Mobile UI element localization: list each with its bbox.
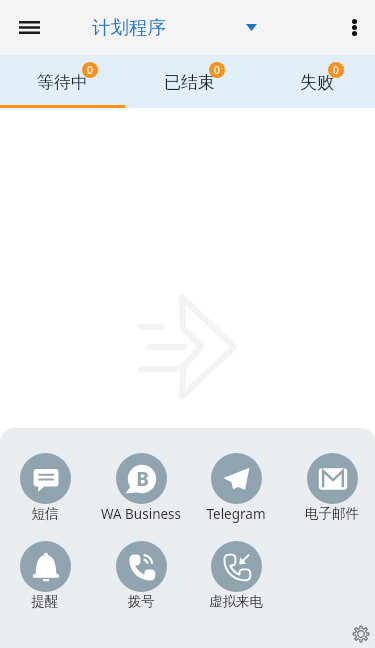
button[interactable]: B (95, 453, 187, 523)
staticText: WA Business (95, 505, 187, 523)
button[interactable]: 失败 (250, 55, 375, 108)
button[interactable]: 提醒 (0, 541, 91, 610)
staticText: 虚拟来电 (190, 593, 282, 610)
button[interactable]: 电子邮件 (286, 453, 375, 522)
staticText: 短信 (0, 505, 91, 522)
staticText: 0 (333, 63, 339, 77)
staticText: B (136, 466, 149, 492)
staticText: 已结束 (164, 72, 215, 93)
button[interactable]: Select schedule list (233, 9, 269, 45)
button[interactable]: Settings (347, 620, 375, 648)
staticText: 等待中 (37, 72, 88, 93)
button[interactable]: 等待中 (0, 55, 125, 108)
button[interactable]: 拨号 (95, 541, 187, 610)
staticText: 失败 (300, 72, 334, 93)
staticText: 提醒 (0, 593, 91, 610)
staticText: Telegram (190, 505, 282, 523)
staticText: 0 (214, 63, 220, 77)
staticText: 电子邮件 (286, 505, 375, 522)
staticText: 拨号 (95, 593, 187, 610)
button[interactable]: Navigation menu (5, 3, 53, 51)
button[interactable]: 短信 (0, 453, 91, 522)
button[interactable]: 已结束 (125, 55, 250, 108)
button[interactable]: Telegram (190, 453, 282, 523)
button[interactable]: More options (332, 5, 375, 49)
staticText: 计划程序 (92, 16, 166, 39)
staticText: 0 (87, 63, 93, 77)
button[interactable]: 虚拟来电 (190, 541, 282, 610)
